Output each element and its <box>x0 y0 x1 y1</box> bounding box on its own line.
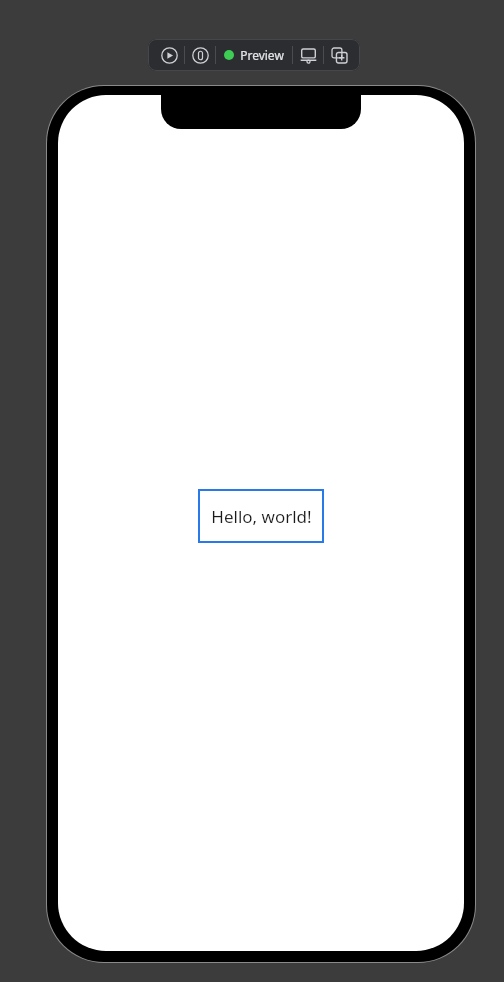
button[interactable]: Add preview <box>324 40 354 70</box>
button[interactable]: Hello, world! <box>198 489 324 543</box>
button[interactable]: Run preview <box>154 40 184 70</box>
staticText: Hello, world! <box>211 505 312 528</box>
staticText: Preview <box>240 47 284 63</box>
button[interactable]: Preview <box>216 42 292 68</box>
button[interactable]: Interactive preview <box>185 40 215 70</box>
button[interactable]: Display settings <box>293 40 323 70</box>
